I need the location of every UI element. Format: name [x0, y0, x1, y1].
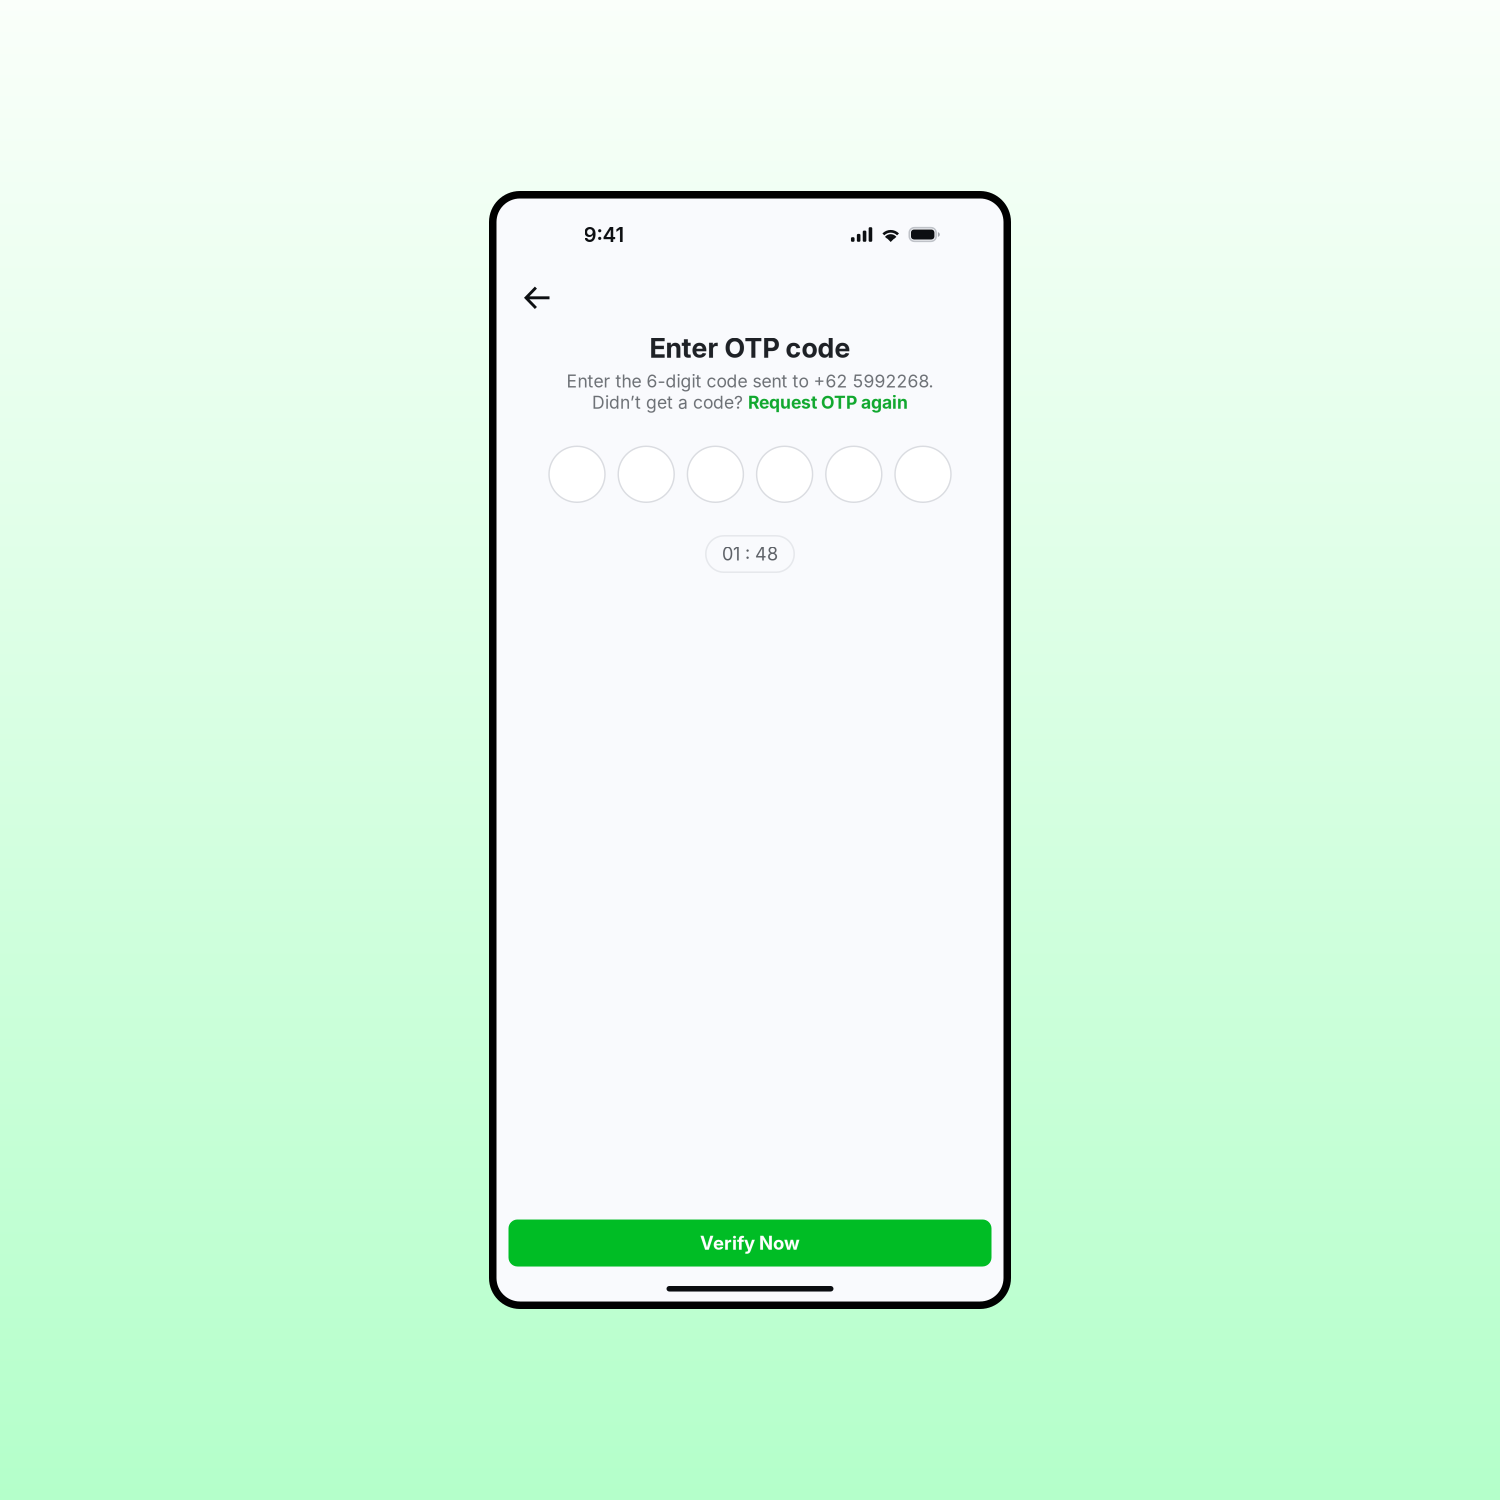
staticText: Enter the 6-digit code sent to +62 59922…: [566, 371, 933, 392]
button[interactable]: OTP digit 2: [617, 445, 675, 503]
button[interactable]: Verify Now: [508, 1219, 991, 1266]
button[interactable]: OTP digit 3: [687, 445, 744, 503]
staticText: 9:41: [583, 222, 624, 247]
staticText: Didn’t get a code?: [592, 392, 748, 413]
button[interactable]: OTP digit 6: [894, 445, 952, 503]
button[interactable]: OTP digit 5: [825, 445, 882, 503]
button[interactable]: OTP digit 4: [756, 445, 813, 503]
staticText: Verify Now: [700, 1232, 800, 1254]
staticText: 01 : 48: [722, 543, 778, 565]
button[interactable]: OTP digit 1: [548, 445, 606, 503]
staticText: Request OTP again: [748, 392, 908, 413]
button[interactable]: Back: [517, 278, 557, 318]
button[interactable]: Request OTP again: [748, 392, 908, 413]
staticText: Enter OTP code: [649, 331, 850, 364]
